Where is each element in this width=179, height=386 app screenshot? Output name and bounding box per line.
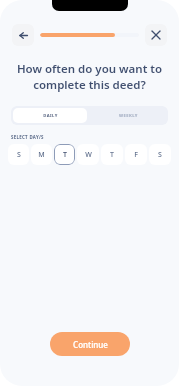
button[interactable]: F — [125, 144, 147, 165]
button[interactable]: T — [101, 144, 123, 165]
button[interactable]: T — [54, 144, 75, 165]
staticText: SELECT DAY/S — [11, 134, 44, 140]
staticText: W — [85, 150, 92, 160]
button[interactable]: W — [77, 144, 99, 165]
button[interactable]: DAILY — [13, 108, 87, 123]
button[interactable]: M — [31, 144, 52, 165]
staticText: S — [17, 150, 21, 160]
button[interactable]: Back — [12, 24, 34, 46]
staticText: T — [110, 150, 114, 160]
staticText: How often do you want to complete this d… — [16, 61, 163, 92]
staticText: F — [134, 150, 138, 160]
staticText: DAILY — [43, 113, 58, 119]
button[interactable]: S — [8, 144, 29, 165]
staticText: S — [158, 150, 162, 160]
staticText: WEEKLY — [119, 113, 138, 119]
button[interactable]: Continue — [50, 332, 130, 356]
staticText: Continue — [73, 339, 108, 350]
button[interactable]: WEEKLY — [89, 106, 168, 125]
staticText: T — [63, 150, 67, 160]
staticText: M — [38, 150, 45, 160]
button[interactable]: S — [149, 144, 171, 165]
button[interactable]: Close — [145, 24, 167, 46]
